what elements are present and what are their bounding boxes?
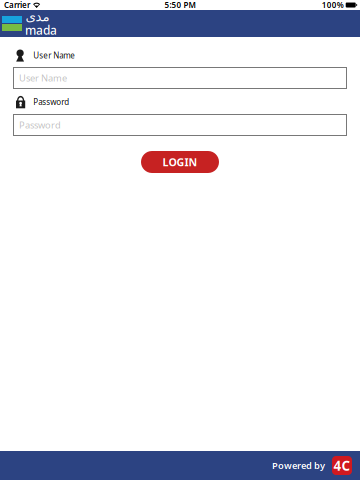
- staticText: User Name: [33, 50, 75, 61]
- button[interactable]: Password: [13, 114, 347, 136]
- button[interactable]: LOGIN: [141, 151, 219, 173]
- staticText: mada: [25, 22, 57, 38]
- staticText: Password: [33, 97, 69, 107]
- button[interactable]: User Name: [13, 67, 347, 89]
- staticText: 5:50 PM: [164, 0, 195, 10]
- staticText: 100%: [322, 0, 344, 10]
- staticText: Password: [19, 119, 61, 131]
- staticText: LOGIN: [162, 155, 197, 169]
- staticText: Carrier: [4, 0, 30, 10]
- staticText: 4C: [333, 457, 350, 474]
- staticText: Powered by: [272, 459, 325, 472]
- staticText: User Name: [19, 72, 67, 84]
- staticText: مدى: [25, 9, 49, 24]
